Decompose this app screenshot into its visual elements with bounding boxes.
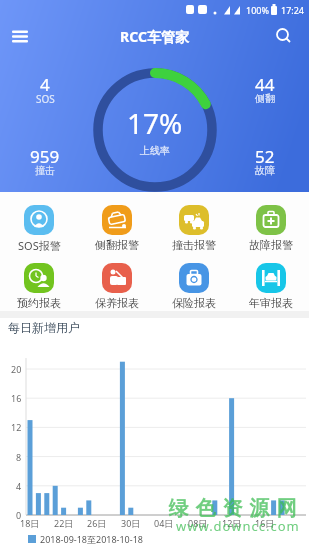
staticText: 8: [16, 451, 22, 463]
staticText: 4: [16, 480, 22, 492]
staticText: 08日: [188, 517, 208, 529]
staticText: RCC车管家: [120, 27, 189, 46]
staticText: 4: [40, 73, 50, 96]
button[interactable]: 保险报表: [155, 263, 232, 310]
staticText: 预约报表: [17, 296, 61, 310]
staticText: 959: [30, 145, 60, 168]
staticText: 0: [16, 509, 22, 521]
staticText: 100%: [246, 4, 269, 16]
staticText: 年审报表: [249, 296, 293, 310]
staticText: 17%: [127, 104, 183, 142]
staticText: 12: [11, 421, 22, 433]
button[interactable]: [266, 19, 302, 53]
button[interactable]: 保养报表: [78, 263, 155, 310]
staticText: 16: [11, 392, 22, 404]
staticText: 保险报表: [172, 296, 216, 310]
button[interactable]: [0, 19, 40, 53]
staticText: 26日: [87, 517, 107, 529]
staticText: 每日新增用户: [8, 320, 80, 335]
staticText: 上线率: [140, 144, 170, 157]
button[interactable]: 撞击报警: [155, 205, 232, 252]
staticText: 52: [255, 145, 275, 168]
staticText: 故障报警: [249, 238, 293, 252]
button[interactable]: 故障报警: [232, 205, 309, 252]
staticText: 保养报表: [95, 296, 139, 310]
staticText: 44: [255, 73, 275, 96]
button[interactable]: 预约报表: [0, 263, 78, 310]
button[interactable]: 侧翻报警: [78, 205, 155, 252]
staticText: SOS: [36, 92, 55, 106]
staticText: 2018-09-18至2018-10-18: [40, 533, 143, 545]
button[interactable]: 年审报表: [232, 263, 309, 310]
staticText: 18日: [20, 517, 40, 529]
staticText: 04日: [154, 517, 174, 529]
staticText: 16日: [255, 517, 275, 529]
staticText: SOS报警: [18, 238, 61, 253]
staticText: 17:24: [281, 4, 305, 16]
staticText: 20: [11, 363, 22, 375]
button[interactable]: SOS报警: [0, 205, 78, 253]
staticText: 故障: [255, 164, 275, 177]
staticText: 12日: [222, 517, 242, 529]
staticText: 侧翻报警: [95, 238, 139, 252]
staticText: 绿色资源网: [165, 496, 300, 521]
staticText: 30日: [121, 517, 141, 529]
staticText: 撞击: [35, 164, 55, 177]
staticText: www.downcc.com: [176, 517, 300, 535]
staticText: 侧翻: [255, 92, 275, 105]
staticText: 撞击报警: [172, 238, 216, 252]
staticText: 22日: [54, 517, 74, 529]
